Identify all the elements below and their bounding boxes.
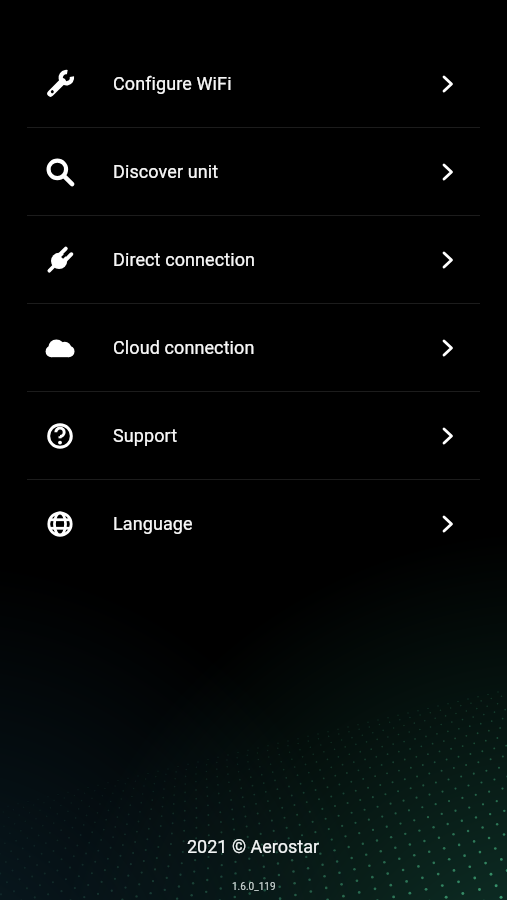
staticText: Support <box>113 425 178 446</box>
staticText: Cloud connection <box>113 337 255 358</box>
button[interactable]: Configure WiFi <box>0 40 507 127</box>
staticText: 1.6.0_119 <box>232 881 276 893</box>
staticText: Discover unit <box>113 161 219 182</box>
button[interactable]: Discover unit <box>0 128 507 215</box>
button[interactable]: Cloud connection <box>0 304 507 391</box>
staticText: Direct connection <box>113 249 256 270</box>
staticText: Configure WiFi <box>113 73 232 94</box>
button[interactable]: Direct connection <box>0 216 507 303</box>
staticText: 2021 © Aerostar <box>187 836 320 857</box>
button[interactable]: Language <box>0 480 507 567</box>
staticText: Language <box>113 513 193 534</box>
button[interactable]: Support <box>0 392 507 479</box>
